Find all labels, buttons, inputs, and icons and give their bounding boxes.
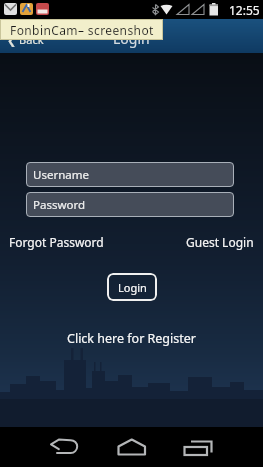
button[interactable]: Guest Login: [186, 234, 254, 250]
staticText: Login: [118, 280, 147, 295]
button[interactable]: Username: [26, 162, 234, 187]
button[interactable]: [99, 427, 165, 467]
staticText: Login: [113, 29, 150, 48]
button[interactable]: Click here for Register: [67, 330, 196, 347]
button[interactable]: Password: [26, 192, 234, 217]
staticText: 12:55: [229, 2, 260, 18]
staticText: FonbinCam– screenshot: [10, 22, 154, 38]
button[interactable]: Forgot Password: [9, 234, 104, 250]
staticText: Password: [33, 197, 86, 213]
staticText: ❮ Back: [7, 32, 44, 47]
button[interactable]: ❮ Back: [7, 32, 44, 47]
button[interactable]: [165, 427, 231, 467]
button[interactable]: [33, 427, 99, 467]
button[interactable]: Login: [107, 273, 157, 301]
staticText: Username: [33, 167, 89, 183]
